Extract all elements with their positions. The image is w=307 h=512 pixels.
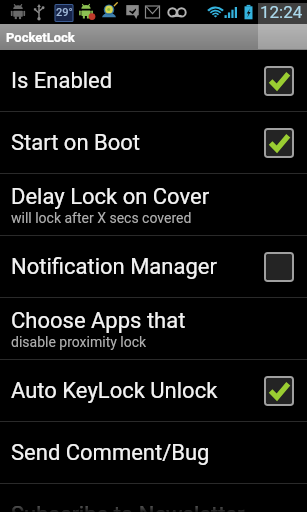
button[interactable]: Is Enabled [0, 50, 307, 111]
staticText: Subscribe to Newsletter [11, 502, 245, 512]
other: Checked [264, 128, 294, 158]
staticText: Is Enabled [11, 68, 113, 94]
staticText: Choose Apps that [11, 308, 186, 334]
staticText: Delay Lock on Cover [11, 184, 210, 210]
staticText: Send Comment/Bug [11, 440, 210, 466]
staticText: 12:24 [260, 2, 303, 22]
staticText: Notification Manager [11, 254, 217, 280]
other: Checked [264, 376, 294, 406]
button[interactable]: Subscribe to Newsletter [0, 484, 307, 512]
button[interactable]: Send Comment/Bug [0, 422, 307, 483]
staticText: will lock after X secs covered [11, 210, 192, 226]
button[interactable]: Choose Apps that [0, 298, 307, 359]
button[interactable]: Start on Boot [0, 112, 307, 173]
staticText: 29° [56, 6, 73, 19]
staticText: Start on Boot [11, 130, 141, 156]
other: Unchecked [264, 252, 294, 282]
staticText: Auto KeyLock Unlock [11, 378, 218, 404]
other: Checked [264, 66, 294, 96]
button[interactable]: Notification Manager [0, 236, 307, 297]
staticText: PocketLock [6, 30, 75, 45]
staticText: disable proximity lock [11, 334, 147, 350]
button[interactable]: Auto KeyLock Unlock [0, 360, 307, 421]
button[interactable]: Delay Lock on Cover [0, 174, 307, 235]
